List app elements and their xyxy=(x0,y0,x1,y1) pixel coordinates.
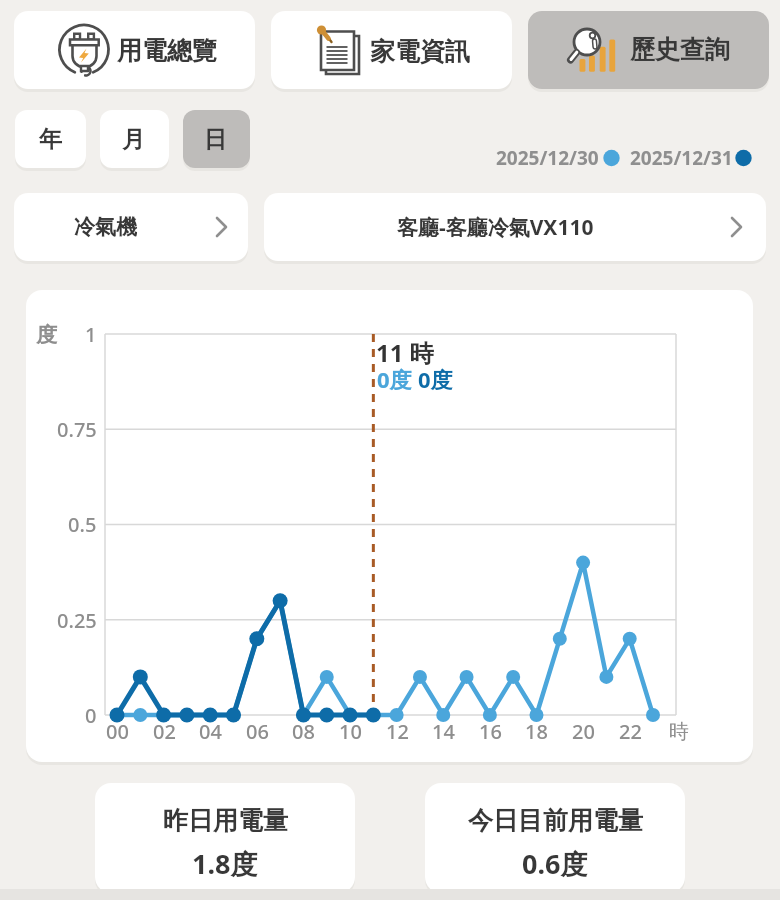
staticText: 02 xyxy=(153,718,176,745)
staticText: 冷氣機 xyxy=(74,214,137,240)
button[interactable] xyxy=(425,783,685,893)
staticText: 2025/12/31 xyxy=(630,145,733,171)
staticText: 0.6度 xyxy=(522,845,588,882)
button[interactable] xyxy=(14,193,248,261)
staticText: 2025/12/30 xyxy=(496,145,599,171)
staticText: 家電資訊 xyxy=(370,36,470,67)
staticText: 22 xyxy=(619,718,642,745)
staticText: 0 xyxy=(85,702,97,729)
staticText: 08 xyxy=(292,718,315,745)
staticText: 日 xyxy=(204,125,227,154)
staticText: 14 xyxy=(432,718,455,745)
staticText: 0.5 xyxy=(68,511,97,538)
staticText: 月 xyxy=(122,125,145,154)
staticText: 04 xyxy=(199,718,222,745)
staticText: 12 xyxy=(386,718,409,745)
button[interactable] xyxy=(100,110,169,168)
staticText: 今日目前用電量 xyxy=(468,805,643,836)
button[interactable] xyxy=(15,110,86,168)
staticText: 00 xyxy=(106,718,129,745)
staticText: 11 時 xyxy=(376,336,434,369)
button[interactable] xyxy=(183,110,250,168)
button[interactable] xyxy=(271,11,512,89)
staticText: 度 xyxy=(36,322,57,348)
staticText: 0.25 xyxy=(57,607,97,634)
button[interactable] xyxy=(14,11,255,89)
staticText: 昨日用電量 xyxy=(163,805,288,836)
staticText: 0度 xyxy=(377,364,412,394)
staticText: 20 xyxy=(572,718,595,745)
staticText: 時 xyxy=(669,719,689,744)
staticText: 1.8度 xyxy=(192,845,258,882)
staticText: 1 xyxy=(85,321,97,348)
button[interactable] xyxy=(528,11,769,89)
staticText: 06 xyxy=(246,718,269,745)
staticText: 用電總覽 xyxy=(117,35,217,66)
button[interactable] xyxy=(264,193,766,261)
staticText: 年 xyxy=(39,125,62,154)
staticText: 16 xyxy=(479,718,502,745)
button[interactable] xyxy=(95,783,355,893)
staticText: 18 xyxy=(525,718,548,745)
staticText: 0.75 xyxy=(57,416,97,443)
staticText: 0度 xyxy=(418,364,453,394)
staticText: 客廳-客廳冷氣VX110 xyxy=(397,213,594,242)
staticText: 10 xyxy=(339,718,362,745)
staticText: 歷史查詢 xyxy=(630,34,730,65)
